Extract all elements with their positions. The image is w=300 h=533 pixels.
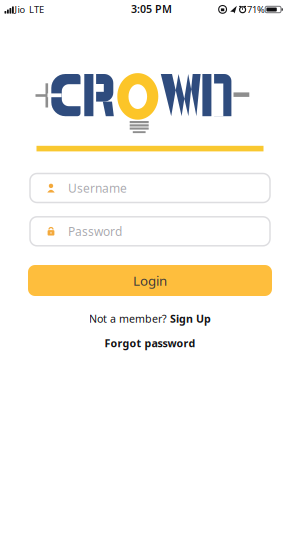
staticText: LTE xyxy=(29,3,44,16)
staticText: Password xyxy=(68,223,122,239)
button[interactable]: Username xyxy=(30,173,270,202)
staticText: Not a member? xyxy=(89,311,167,326)
staticText: Forgot password xyxy=(104,336,195,350)
staticText: 71% xyxy=(247,3,265,16)
staticText: Jio xyxy=(14,3,25,16)
button[interactable]: Forgot password xyxy=(104,336,195,350)
staticText: 3:05 PM xyxy=(131,2,172,16)
staticText: Username xyxy=(68,180,127,196)
staticText: Login xyxy=(133,272,167,289)
button[interactable]: Sign Up xyxy=(170,311,211,326)
button[interactable]: Login xyxy=(28,265,272,296)
staticText: Sign Up xyxy=(170,311,211,326)
button[interactable]: Password xyxy=(30,217,270,246)
